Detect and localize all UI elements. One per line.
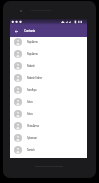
button[interactable]: Raja Anna [10, 48, 87, 60]
button[interactable]: Tamizh [10, 144, 87, 156]
staticText: Shiva Anna [27, 124, 39, 128]
button[interactable]: Selva [10, 108, 87, 120]
staticText: Tamizh [27, 148, 35, 152]
staticText: Raja Anna [27, 52, 38, 56]
staticText: Sandhya [27, 88, 37, 92]
button[interactable]: Selva [10, 96, 87, 108]
button[interactable]: Sylvarsan [10, 132, 87, 144]
staticText: Selva [27, 100, 33, 104]
button[interactable]: Shiva Anna [10, 120, 87, 132]
button[interactable]: Sandhya [10, 84, 87, 96]
button[interactable]: Rakesh Father [10, 72, 87, 84]
staticText: Rakesh [27, 64, 35, 68]
button[interactable]: Raja Anna [10, 37, 87, 48]
button[interactable]: Rakesh [10, 60, 87, 72]
staticText: Raja Anna [27, 40, 38, 44]
staticText: Rakesh Father [27, 76, 43, 80]
staticText: Sylvarsan [27, 136, 38, 140]
staticText: Contacts [24, 29, 35, 33]
staticText: Selva [27, 112, 33, 116]
button[interactable]: Back [10, 25, 22, 37]
